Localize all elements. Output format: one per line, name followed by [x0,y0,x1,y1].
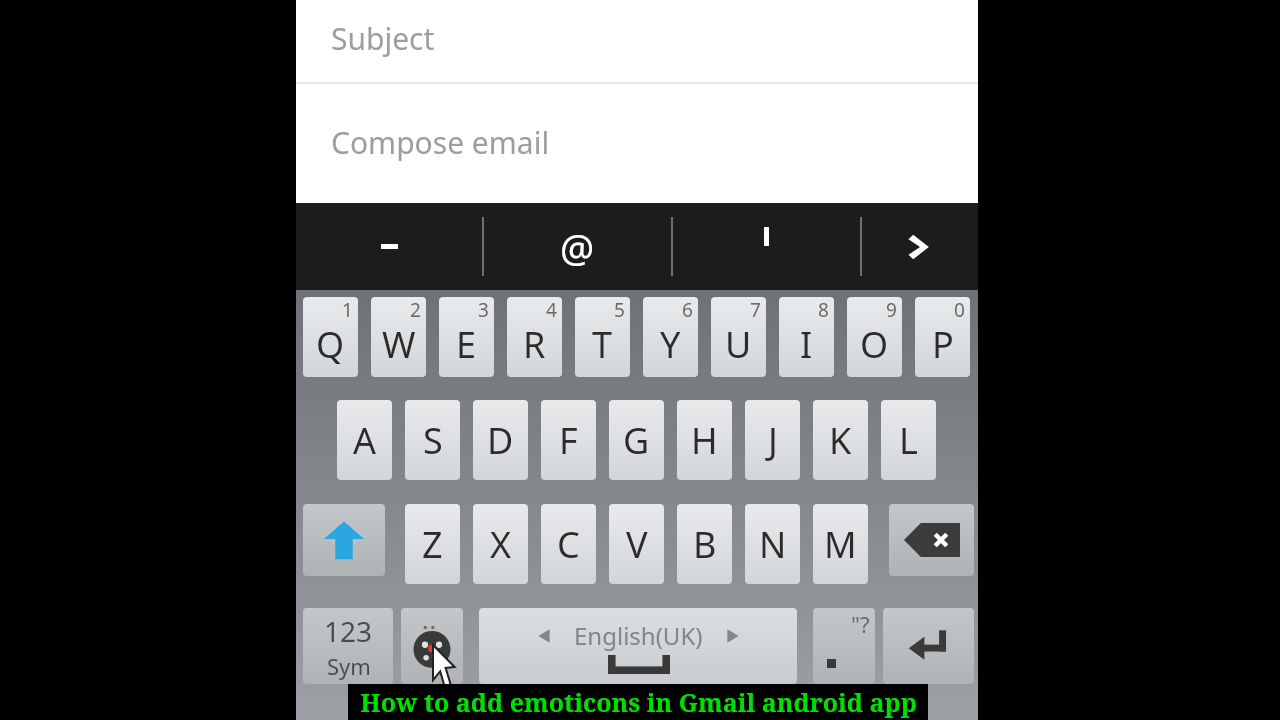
button[interactable]: H [677,400,732,480]
button[interactable]: More suggestions [862,203,978,290]
button[interactable]: Emoticons [401,608,463,684]
staticText: B [693,520,717,569]
staticText: H [691,416,718,465]
staticText: E [456,320,477,369]
button[interactable]: @ [484,203,671,290]
staticText: F [559,416,578,465]
staticText: M [824,520,857,569]
staticText: T [592,320,613,369]
button[interactable]: G [609,400,664,480]
staticText: Y [660,320,681,369]
button[interactable]: K [813,400,868,480]
staticText: 4 [546,297,557,323]
staticText: @ [560,221,595,273]
button[interactable]: Hyphen [296,203,482,290]
button[interactable]: M [813,504,868,584]
staticText: N [759,520,787,569]
button[interactable]: Enter [883,608,974,684]
button[interactable]: N [745,504,800,584]
staticText: 123 [324,612,373,650]
button[interactable]: Shift [303,504,385,576]
staticText: K [829,416,852,465]
button[interactable]: Compose email [296,84,978,203]
staticText: V [626,520,648,569]
button[interactable]: J [745,400,800,480]
staticText: Subject [331,18,435,59]
staticText: O [860,320,889,369]
staticText: 3 [478,297,489,323]
staticText: P [932,320,954,369]
button[interactable]: D [473,400,528,480]
staticText: R [523,320,546,369]
staticText: 2 [410,297,421,323]
staticText: X [490,520,512,569]
staticText: 9 [886,297,897,323]
button[interactable]: 4 [507,297,562,377]
button[interactable]: 7 [711,297,766,377]
button[interactable]: Period [813,608,875,684]
staticText: A [353,416,377,465]
button[interactable]: Apostrophe [673,203,860,290]
staticText: J [768,416,778,465]
button[interactable]: B [677,504,732,584]
button[interactable]: L [881,400,936,480]
button[interactable]: 3 [439,297,494,377]
button[interactable]: 1 [303,297,358,377]
button[interactable]: Backspace [889,504,974,576]
staticText: 0 [954,297,965,323]
staticText: S [423,416,443,465]
button[interactable]: A [337,400,392,480]
button[interactable]: Symbols and numbers [303,608,393,684]
staticText: 5 [614,297,625,323]
staticText: 1 [342,297,353,323]
staticText: "? [851,609,870,639]
staticText: C [557,520,580,569]
staticText: 8 [818,297,829,323]
button[interactable]: Subject [296,0,978,82]
button[interactable]: F [541,400,596,480]
button[interactable]: C [541,504,596,584]
staticText: Z [422,520,443,569]
button[interactable]: 5 [575,297,630,377]
staticText: D [487,416,514,465]
button[interactable]: V [609,504,664,584]
button[interactable]: Space [479,608,797,684]
staticText: English(UK) [574,619,703,652]
button[interactable]: 0 [915,297,970,377]
staticText: Q [316,320,345,369]
button[interactable]: Z [405,504,460,584]
button[interactable]: S [405,400,460,480]
staticText: 6 [682,297,693,323]
button[interactable]: 9 [847,297,902,377]
button[interactable]: X [473,504,528,584]
staticText: U [725,320,752,369]
button[interactable]: 2 [371,297,426,377]
staticText: Sym [327,651,371,681]
staticText: W [382,320,416,369]
staticText: I [800,320,813,369]
staticText: 7 [750,297,761,323]
button[interactable]: 8 [779,297,834,377]
button[interactable]: 6 [643,297,698,377]
staticText: G [623,416,650,465]
staticText: L [899,416,918,465]
staticText: Compose email [331,122,550,163]
staticText: How to add emoticons in Gmail android ap… [360,685,917,719]
